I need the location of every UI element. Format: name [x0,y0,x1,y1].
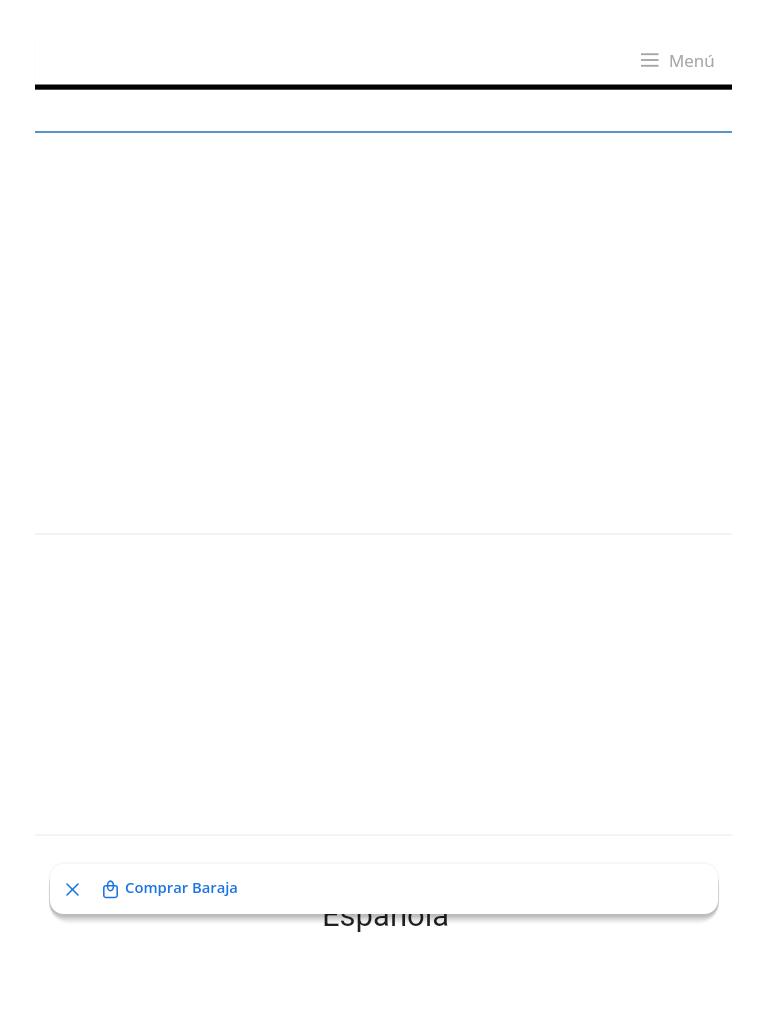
staticText: Comprar Baraja [125,877,238,897]
button[interactable] [50,864,718,914]
button[interactable]: Cerrar [58,875,86,903]
staticText: Menú [669,49,715,72]
button[interactable]: Menú [641,44,717,76]
staticText: Española [322,897,450,933]
button[interactable]: Comprar Baraja [102,876,238,898]
